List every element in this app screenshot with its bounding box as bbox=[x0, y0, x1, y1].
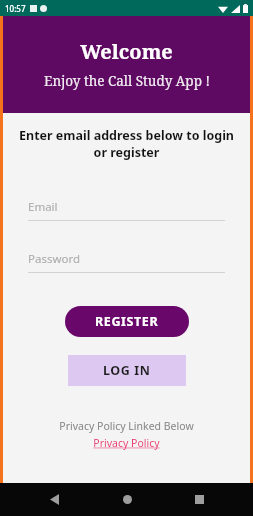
button[interactable]: LOG IN bbox=[68, 355, 186, 386]
button[interactable]: Password bbox=[28, 251, 225, 273]
button[interactable]: Privacy Policy bbox=[93, 436, 160, 450]
button[interactable]: REGISTER bbox=[65, 306, 189, 337]
button[interactable]: Email bbox=[28, 199, 225, 221]
staticText: Privacy Policy Linked Below bbox=[59, 419, 194, 433]
button[interactable]: Recent apps bbox=[181, 483, 217, 516]
button[interactable]: Home bbox=[109, 483, 145, 516]
staticText: Welcome bbox=[80, 38, 173, 65]
staticText: Email bbox=[28, 199, 58, 215]
staticText: Enjoy the Call Study App ! bbox=[44, 72, 210, 90]
staticText: Privacy Policy bbox=[93, 436, 160, 450]
button[interactable]: Back bbox=[36, 483, 72, 516]
staticText: 10:57 bbox=[5, 3, 26, 14]
staticText: Password bbox=[28, 251, 81, 267]
staticText: LOG IN bbox=[103, 362, 151, 379]
staticText: REGISTER bbox=[95, 313, 159, 330]
staticText: Enter email address below to login or re… bbox=[17, 127, 236, 161]
